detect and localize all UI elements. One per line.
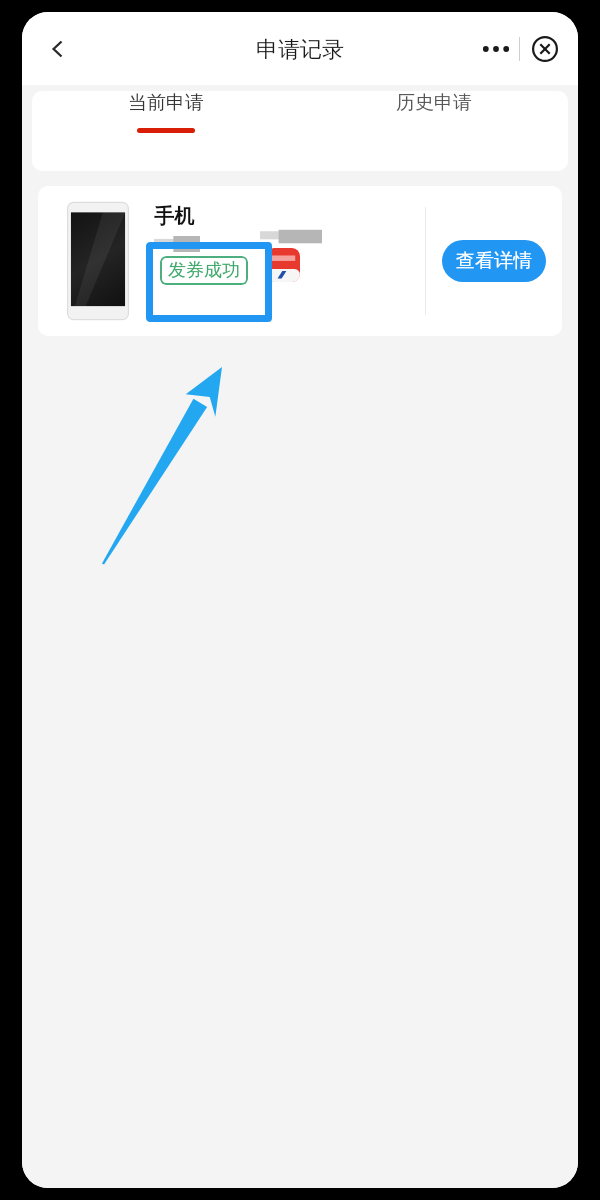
staticText: 申请记录: [256, 36, 344, 64]
button[interactable]: More options: [473, 27, 519, 71]
staticText: 查看详情: [456, 249, 532, 273]
button[interactable]: 查看详情: [442, 240, 546, 282]
staticText: 手机: [154, 204, 194, 229]
button[interactable]: 当前申请: [32, 91, 300, 133]
staticText: 发券成功: [168, 259, 240, 282]
staticText: 历史申请: [396, 91, 472, 115]
button[interactable]: 发券成功: [168, 259, 240, 282]
button[interactable]: Back: [34, 25, 82, 73]
button[interactable]: 手机: [38, 186, 562, 336]
staticText: 当前申请: [128, 91, 204, 115]
button[interactable]: 历史申请: [300, 91, 568, 133]
button[interactable]: Close: [520, 24, 570, 74]
